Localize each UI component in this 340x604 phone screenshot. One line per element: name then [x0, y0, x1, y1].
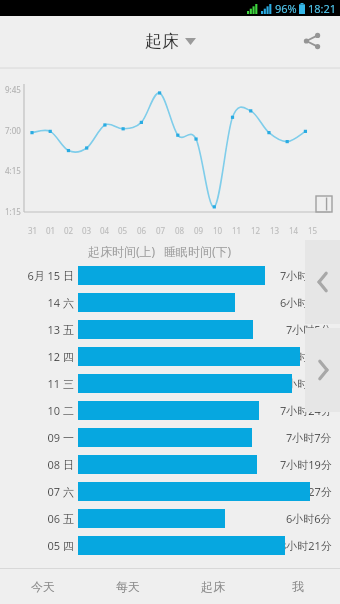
staticText: 18:21	[308, 1, 337, 16]
staticText: 6月 15 日	[27, 268, 74, 283]
button[interactable]: Share	[292, 21, 332, 61]
button[interactable]: 09 一	[0, 424, 340, 451]
button[interactable]: 今天	[0, 569, 85, 604]
staticText: 09	[194, 225, 204, 236]
staticText: 8小时59分	[280, 349, 332, 364]
staticText: 今天	[31, 579, 55, 594]
staticText: 06 五	[47, 511, 74, 526]
button[interactable]: 14 六	[0, 289, 340, 316]
staticText: 起床	[145, 31, 179, 52]
staticText: 05	[118, 225, 128, 236]
staticText: 11 三	[47, 376, 74, 391]
staticText: 15	[308, 225, 318, 236]
staticText: 7小时19分	[280, 457, 332, 472]
staticText: 02	[64, 225, 74, 236]
staticText: 4:15	[5, 165, 21, 176]
button[interactable]: Previous	[305, 240, 340, 324]
staticText: 7小时42分	[280, 268, 332, 283]
staticText: 03	[82, 225, 92, 236]
button[interactable]: 08 日	[0, 451, 340, 478]
button[interactable]: Toggle split view	[314, 194, 334, 214]
button[interactable]: 每天	[85, 569, 170, 604]
staticText: 08 日	[47, 457, 74, 472]
staticText: 9小时27分	[280, 484, 332, 499]
staticText: 我	[292, 579, 304, 594]
button[interactable]: 起床	[170, 569, 255, 604]
button[interactable]: 06 五	[0, 505, 340, 532]
staticText: 8小时21分	[280, 538, 332, 553]
staticText: 7小时5分	[286, 322, 332, 337]
button[interactable]: 6月 15 日	[0, 262, 340, 289]
staticText: 14 六	[47, 295, 74, 310]
button[interactable]: 11 三	[0, 370, 340, 397]
staticText: 06	[137, 225, 147, 236]
button[interactable]: Next	[305, 328, 340, 412]
button[interactable]: 13 五	[0, 316, 340, 343]
staticText: 12 四	[47, 349, 74, 364]
staticText: 6小时6分	[286, 511, 332, 526]
staticText: 01	[46, 225, 56, 236]
staticText: 05 四	[47, 538, 74, 553]
button[interactable]: 起床	[145, 31, 196, 52]
button[interactable]: 07 六	[0, 478, 340, 505]
staticText: 6小时33分	[280, 295, 332, 310]
staticText: 13 五	[47, 322, 74, 337]
staticText: 96%	[275, 1, 297, 16]
button[interactable]: 12 四	[0, 343, 340, 370]
staticText: 睡眠时间(下)	[164, 243, 232, 259]
staticText: 31	[28, 225, 38, 236]
staticText: 14	[289, 225, 299, 236]
staticText: 7小时24分	[280, 403, 332, 418]
staticText: 7小时7分	[286, 430, 332, 445]
button[interactable]: 我	[255, 569, 340, 604]
staticText: 9:45	[5, 84, 21, 95]
staticText: 起床	[201, 579, 225, 594]
staticText: 11	[232, 225, 242, 236]
button[interactable]: 10 二	[0, 397, 340, 424]
staticText: 起床时间(上)	[88, 243, 156, 259]
staticText: 8小时39分	[280, 376, 332, 391]
staticText: 12	[251, 225, 261, 236]
staticText: 1:15	[5, 206, 21, 217]
staticText: 08	[175, 225, 185, 236]
staticText: 7:00	[5, 125, 21, 136]
button[interactable]: 05 四	[0, 532, 340, 559]
staticText: 10	[213, 225, 223, 236]
staticText: 10 二	[47, 403, 74, 418]
staticText: 04	[100, 225, 110, 236]
staticText: 07 六	[47, 484, 74, 499]
staticText: 每天	[116, 579, 140, 594]
staticText: 09 一	[47, 430, 74, 445]
staticText: 07	[156, 225, 166, 236]
staticText: 13	[270, 225, 280, 236]
